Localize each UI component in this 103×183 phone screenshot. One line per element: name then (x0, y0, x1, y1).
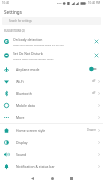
staticText: Search for settings (9, 19, 32, 23)
staticText: Settings (4, 9, 22, 15)
staticText: Sound (16, 152, 98, 157)
staticText: Notification & status bar (16, 164, 98, 169)
staticText: Airplane mode (16, 67, 89, 72)
button[interactable]: Back (27, 173, 37, 183)
button[interactable]: Home screen style (0, 124, 103, 136)
button[interactable]: Set Do Not Disturb (0, 48, 103, 62)
button[interactable]: Dismiss suggestion (92, 37, 101, 46)
staticText: 10:40 PM (88, 1, 101, 5)
staticText: Set Do Not Disturb (13, 51, 43, 56)
button[interactable]: Wi-Fi (0, 75, 103, 87)
staticText: off (92, 79, 96, 83)
staticText: Silence alerts during specific times (13, 57, 54, 60)
staticText: Drawer (87, 128, 96, 132)
staticText: Bluetooth (16, 91, 92, 96)
staticText: Mobile data (16, 103, 98, 108)
staticText: off (92, 91, 96, 95)
button[interactable]: Mobile data (0, 99, 103, 111)
button[interactable]: Search for settings (2, 17, 101, 25)
button[interactable]: Display (0, 136, 103, 148)
staticText: Home screen style (16, 128, 87, 133)
staticText: Wi-Fi (16, 79, 92, 84)
button[interactable]: Airplane mode toggle (89, 63, 100, 75)
button[interactable]: Home (47, 173, 57, 183)
staticText: SUGGESTIONS (2) (4, 29, 25, 32)
button[interactable]: Dismiss suggestion (92, 51, 101, 60)
button[interactable]: Airplane mode (0, 63, 103, 75)
staticText: More (16, 115, 98, 120)
button[interactable]: Notification & status bar (0, 160, 103, 172)
staticText: On body detection (13, 37, 43, 42)
staticText: 10:40 (2, 1, 10, 5)
button[interactable]: Sound (0, 148, 103, 160)
staticText: Keep your device unlocked while it's on … (13, 43, 64, 46)
button[interactable]: More (0, 111, 103, 123)
button[interactable]: Recent apps (66, 173, 76, 183)
staticText: Display (16, 140, 98, 145)
button[interactable]: Bluetooth (0, 87, 103, 99)
button[interactable]: On body detection (0, 34, 103, 48)
